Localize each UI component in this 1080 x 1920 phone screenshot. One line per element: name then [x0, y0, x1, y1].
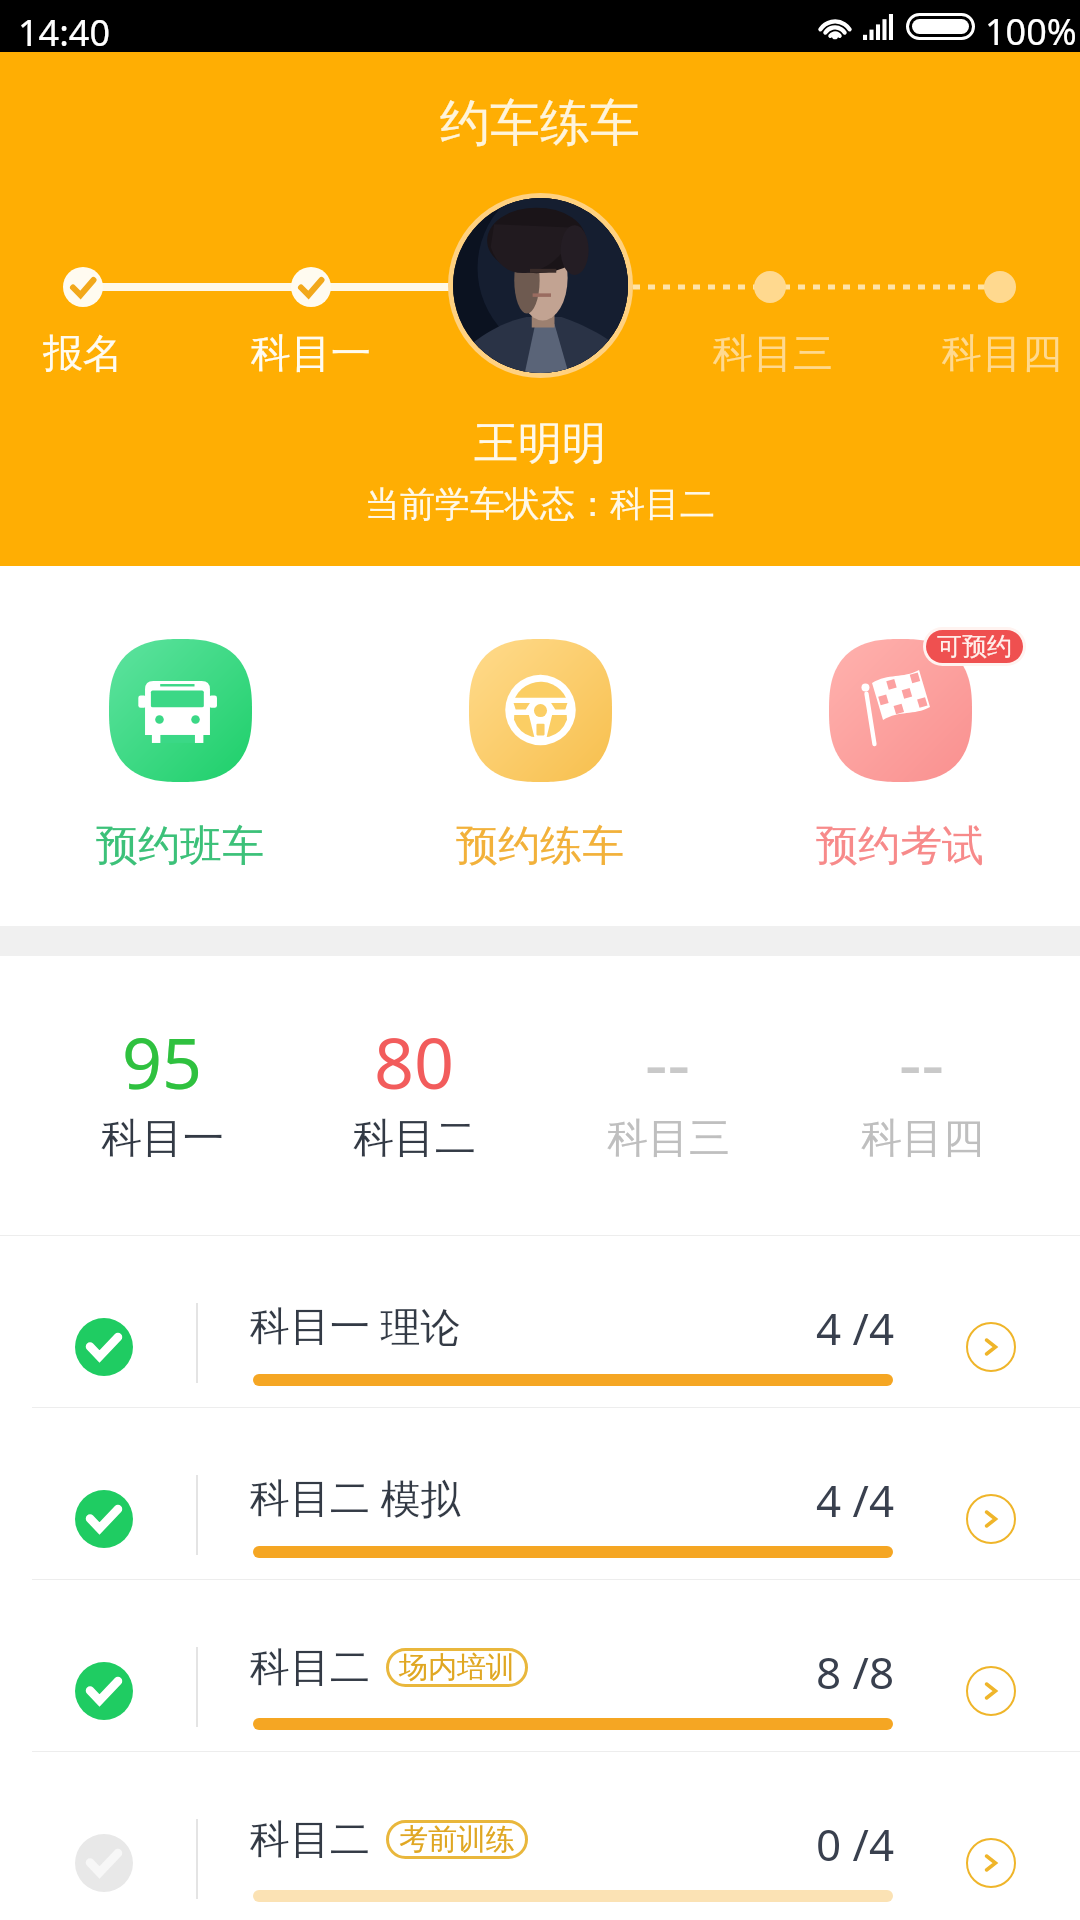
staticText: 科目一: [101, 1113, 224, 1165]
button[interactable]: --: [538, 1014, 798, 1165]
staticText: 科目二: [250, 1473, 370, 1523]
button[interactable]: --: [792, 1014, 1052, 1165]
staticText: 科目四: [942, 328, 1062, 378]
staticText: --: [645, 1014, 691, 1109]
staticText: 报名: [43, 328, 123, 378]
staticText: 4 /4: [816, 1470, 895, 1530]
staticText: 预约班车: [96, 820, 264, 873]
button[interactable]: 预约考试: [770, 639, 1030, 873]
button[interactable]: Avatar: [448, 193, 633, 378]
staticText: 科目二: [353, 1113, 476, 1165]
button[interactable]: Open 科目一: [966, 1322, 1016, 1372]
staticText: 当前学车状态：科目二: [365, 482, 715, 526]
button[interactable]: 80: [284, 1014, 544, 1165]
button[interactable]: 科目三: [613, 328, 933, 378]
staticText: 科目四: [861, 1113, 984, 1165]
button[interactable]: 科目二: [0, 1752, 1080, 1920]
staticText: 王明明: [474, 416, 606, 471]
staticText: 理论: [370, 1298, 461, 1353]
staticText: 预约考试: [816, 820, 984, 873]
button[interactable]: 可预约: [926, 630, 1023, 663]
button[interactable]: 预约练车: [410, 639, 670, 873]
staticText: 可预约: [937, 631, 1012, 662]
staticText: 模拟: [370, 1470, 461, 1525]
button[interactable]: 科目一: [0, 1236, 1080, 1407]
staticText: 8 /8: [816, 1642, 895, 1702]
staticText: 科目一: [250, 1301, 370, 1351]
staticText: 科目三: [607, 1113, 730, 1165]
staticText: 0 /4: [816, 1814, 895, 1874]
button[interactable]: 报名: [0, 328, 243, 378]
staticText: 预约练车: [456, 820, 624, 873]
button[interactable]: 预约班车: [50, 639, 310, 873]
button[interactable]: Open 科目二: [966, 1838, 1016, 1888]
staticText: 科目二: [250, 1642, 370, 1692]
staticText: 80: [374, 1014, 455, 1109]
staticText: 科目一: [251, 328, 371, 378]
button[interactable]: Open 科目二: [966, 1494, 1016, 1544]
button[interactable]: 科目一: [151, 328, 471, 378]
button[interactable]: 科目二: [0, 1580, 1080, 1751]
staticText: 100%: [985, 7, 1077, 56]
button[interactable]: 科目四: [842, 328, 1080, 378]
staticText: 考前训练: [399, 1821, 515, 1858]
staticText: 4 /4: [816, 1298, 895, 1358]
staticText: 场内培训: [399, 1649, 515, 1686]
staticText: 约车练车: [440, 92, 640, 155]
staticText: 科目二: [250, 1814, 370, 1864]
staticText: 95: [122, 1014, 203, 1109]
button[interactable]: Open 科目二: [966, 1666, 1016, 1716]
staticText: --: [899, 1014, 945, 1109]
staticText: 14:40: [18, 8, 111, 57]
button[interactable]: 95: [32, 1014, 292, 1165]
staticText: 科目三: [713, 328, 833, 378]
button[interactable]: 科目二: [0, 1408, 1080, 1579]
